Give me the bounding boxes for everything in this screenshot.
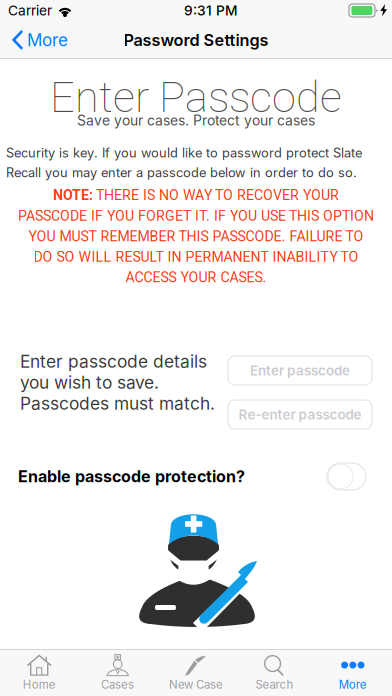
staticText: Search [255,678,293,691]
staticText: More [27,30,68,50]
staticText: Enter Passcode [50,72,342,123]
button[interactable]: Home [0,651,78,694]
button[interactable]: Re-enter passcode [228,400,372,429]
staticText: Cases [101,678,134,691]
button[interactable]: Search [235,651,314,694]
staticText: Recall you may enter a passcode below in… [6,165,357,180]
button[interactable]: Enter passcode [228,356,372,385]
button[interactable]: More [0,23,76,57]
button[interactable]: Enable passcode protection [327,463,366,490]
staticText: YOU MUST REMEMBER THIS PASSCODE. FAILURE… [28,228,363,245]
staticText: PASSCODE IF YOU FORGET IT. IF YOU USE TH… [18,208,374,224]
button[interactable]: Cases [78,651,157,694]
staticText: More [339,678,367,691]
staticText: Password Settings [123,30,268,50]
staticText: New Case [169,678,223,691]
staticText: Home [23,678,56,691]
staticText: 9:31 PM [184,2,238,19]
staticText: Enter passcode [250,362,350,379]
button[interactable]: More [314,651,392,694]
staticText: Re-enter passcode [238,406,361,423]
staticText: Enter passcode details you wish to save.… [20,351,215,414]
button[interactable]: New Case [157,651,235,694]
staticText: Security is key. If you would like to pa… [6,145,362,160]
staticText: DO SO WILL RESULT IN PERMANENT INABILITY… [33,249,358,265]
staticText: ACCESS YOUR CASES. [125,269,266,286]
staticText: NOTE: THERE IS NO WAY TO RECOVER YOUR [53,187,339,204]
staticText: Save your cases. Protect your cases [77,112,315,129]
staticText: Enable passcode protection? [18,467,245,486]
staticText: Carrier [8,2,52,19]
